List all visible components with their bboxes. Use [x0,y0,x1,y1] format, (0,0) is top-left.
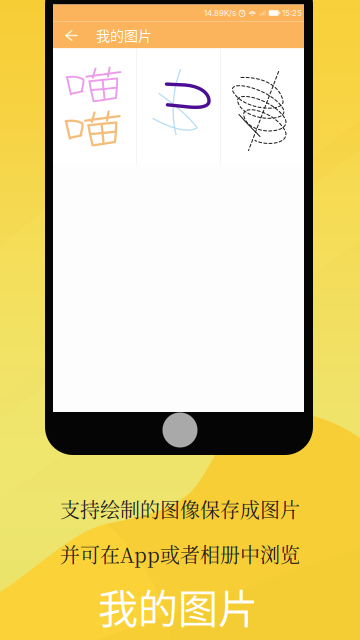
staticText: 我的图片 [96,25,152,45]
staticText: 我的图片 [98,577,258,635]
button[interactable]: Drawing 1 [53,48,136,164]
staticText: 支持绘制的图像保存成图片 [60,495,300,523]
staticText: 并可在App或者相册中浏览 [60,540,300,568]
button[interactable]: Back [53,21,89,48]
button[interactable]: Drawing 2 [137,48,220,164]
button[interactable]: Drawing 3 [221,48,304,164]
staticText: 15:25 [282,8,302,18]
staticText: 14.89K/s [204,8,236,18]
